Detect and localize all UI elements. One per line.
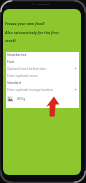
staticText: Enter optional storage location: [7, 88, 54, 92]
button[interactable]: Fruit: [6, 58, 79, 65]
staticText: Fruit: [7, 60, 15, 64]
staticText: Standard: [7, 81, 21, 85]
button[interactable]: Enter optional count: [6, 72, 79, 79]
button[interactable]: Strawberries: [6, 52, 79, 58]
button[interactable]: Optional: best before date: [6, 65, 79, 72]
staticText: Strawberries: [7, 53, 27, 57]
staticText: Freeze your own food!: [5, 21, 45, 26]
staticText: Enter optional count: [7, 74, 38, 78]
staticText: Optional: best before date: [7, 67, 47, 71]
button[interactable]: Enter optional storage location: [6, 86, 79, 93]
button[interactable]: Standard: [6, 79, 79, 86]
staticText: Also retroactively for the first stock): [5, 30, 59, 43]
staticText: 800 g: [17, 97, 26, 101]
